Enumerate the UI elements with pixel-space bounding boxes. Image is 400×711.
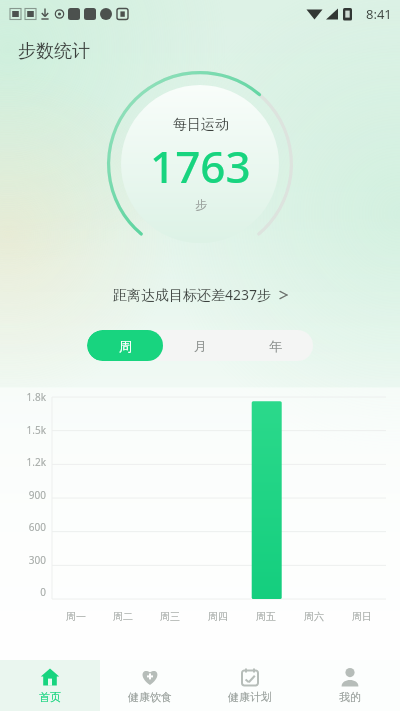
staticText: 300 <box>28 553 46 567</box>
staticText: 周六 <box>304 610 324 623</box>
staticText: 1.2k <box>26 455 46 469</box>
staticText: 1.5k <box>26 423 46 437</box>
button[interactable]: 周 <box>87 330 163 361</box>
staticText: 周四 <box>208 610 228 623</box>
staticText: 首页 <box>39 690 61 704</box>
staticText: 8:41 <box>366 5 392 23</box>
staticText: 0 <box>40 585 46 599</box>
button[interactable]: 健康饮食 <box>100 660 200 711</box>
staticText: 每日运动 <box>173 116 229 134</box>
staticText: 周三 <box>160 610 180 623</box>
button[interactable]: 首页 <box>0 660 100 711</box>
other: 健康计划 <box>240 667 260 687</box>
staticText: 周 <box>119 338 132 354</box>
staticText: 年 <box>269 338 282 354</box>
button[interactable]: 距离达成目标还差4237步 <box>107 281 294 308</box>
staticText: 距离达成目标还差4237步 <box>113 285 272 304</box>
button[interactable]: 年 <box>238 330 313 361</box>
staticText: 1763 <box>150 136 251 196</box>
staticText: 月 <box>194 338 207 354</box>
other: 我的 <box>340 667 360 687</box>
other: 健康饮食 <box>140 667 160 687</box>
staticText: 周一 <box>66 610 86 623</box>
staticText: 健康饮食 <box>128 690 172 704</box>
staticText: 周日 <box>352 610 372 623</box>
staticText: 600 <box>28 520 46 534</box>
staticText: 900 <box>28 488 46 502</box>
other: 首页 <box>40 667 60 687</box>
staticText: 健康计划 <box>228 690 272 704</box>
button[interactable]: 月 <box>163 330 238 361</box>
staticText: 我的 <box>339 690 361 704</box>
staticText: 步 <box>195 197 207 212</box>
button[interactable]: 我的 <box>300 660 400 711</box>
staticText: 步数统计 <box>18 40 90 63</box>
staticText: 周二 <box>113 610 133 623</box>
staticText: 周五 <box>256 610 276 623</box>
button[interactable]: 健康计划 <box>200 660 300 711</box>
staticText: 1.8k <box>26 390 46 404</box>
